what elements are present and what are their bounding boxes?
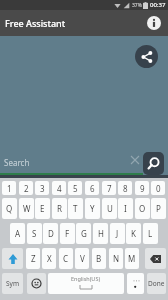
staticText: H	[98, 228, 104, 239]
button[interactable]: L	[143, 223, 158, 244]
button[interactable]: X	[42, 248, 56, 269]
button[interactable]	[143, 152, 164, 175]
button[interactable]: C	[59, 248, 73, 269]
staticText: 00:37	[150, 1, 166, 9]
button[interactable]: R	[52, 198, 67, 219]
staticText: Done	[148, 279, 165, 288]
staticText: Free Assistant	[5, 17, 66, 29]
button[interactable]: 1	[2, 181, 16, 195]
staticText: B	[96, 253, 102, 264]
staticText: V	[80, 253, 85, 264]
staticText: 7	[107, 183, 112, 194]
button[interactable]: P	[151, 198, 166, 219]
button[interactable]: B	[92, 248, 106, 269]
button[interactable]: Z	[26, 248, 40, 269]
button[interactable]: I	[118, 198, 133, 219]
button[interactable]: E	[35, 198, 50, 219]
staticText: 3	[40, 183, 45, 194]
staticText: D	[48, 228, 54, 239]
button[interactable]: S	[27, 223, 42, 244]
staticText: U	[107, 203, 113, 214]
button[interactable]: 9	[135, 181, 149, 195]
staticText: Sym	[6, 279, 19, 288]
button[interactable]: F	[60, 223, 75, 244]
staticText: I	[124, 203, 127, 214]
staticText: W	[23, 203, 31, 214]
staticText: 4	[57, 183, 62, 194]
button[interactable]: H	[93, 223, 108, 244]
button[interactable]: 5	[68, 181, 82, 195]
staticText: N	[113, 253, 120, 264]
button[interactable]: 4	[52, 181, 66, 195]
button[interactable]: Sym	[2, 273, 23, 294]
staticText: 6	[90, 183, 95, 194]
staticText: S	[32, 228, 37, 239]
button[interactable]: English(US)	[48, 273, 124, 294]
staticText: Z	[31, 253, 36, 264]
button[interactable]: Done	[147, 273, 166, 294]
button[interactable]: D	[43, 223, 58, 244]
button[interactable]	[145, 248, 166, 269]
staticText: G	[81, 228, 87, 239]
button[interactable]: Y	[85, 198, 100, 219]
staticText: 0	[156, 183, 161, 194]
staticText: J	[116, 228, 119, 239]
staticText: Search	[4, 157, 30, 168]
staticText: Q	[6, 203, 13, 214]
staticText: M	[128, 253, 136, 264]
staticText: Y	[90, 203, 95, 214]
staticText: 2	[24, 183, 29, 194]
button[interactable]	[2, 248, 23, 269]
button[interactable]: J	[110, 223, 125, 244]
button[interactable]	[27, 273, 46, 294]
staticText: E	[40, 203, 45, 214]
button[interactable]: 0	[151, 181, 165, 195]
staticText: 5	[73, 183, 78, 194]
button[interactable]: O	[135, 198, 150, 219]
staticText: 1	[7, 183, 12, 194]
button[interactable]	[135, 45, 158, 68]
staticText: 8	[123, 183, 128, 194]
button[interactable]: N	[109, 248, 123, 269]
staticText: C	[63, 253, 69, 264]
button[interactable]: 7	[102, 181, 116, 195]
staticText: A	[15, 228, 21, 239]
staticText: T	[73, 203, 78, 214]
button[interactable]: 6	[85, 181, 99, 195]
staticText: 37%	[132, 2, 142, 9]
button[interactable]: 8	[118, 181, 132, 195]
staticText: F	[65, 228, 70, 239]
button[interactable]: G	[76, 223, 91, 244]
staticText: L	[148, 228, 153, 239]
button[interactable]: T	[68, 198, 83, 219]
button[interactable]: V	[75, 248, 89, 269]
staticText: R	[57, 203, 62, 214]
staticText: K	[131, 228, 136, 239]
button[interactable]: U	[102, 198, 117, 219]
button[interactable]: A	[10, 223, 25, 244]
staticText: P	[156, 203, 161, 214]
staticText: English(US)	[71, 275, 101, 282]
button[interactable]: M	[125, 248, 139, 269]
button[interactable]: K	[126, 223, 141, 244]
staticText: X	[47, 253, 52, 264]
button[interactable]: 2	[19, 181, 33, 195]
staticText: 9	[140, 183, 145, 194]
button[interactable]: Q	[2, 198, 17, 219]
button[interactable]	[127, 273, 144, 294]
button[interactable]: 3	[35, 181, 49, 195]
button[interactable]	[147, 16, 161, 30]
staticText: O	[139, 203, 146, 214]
button[interactable]: W	[19, 198, 34, 219]
